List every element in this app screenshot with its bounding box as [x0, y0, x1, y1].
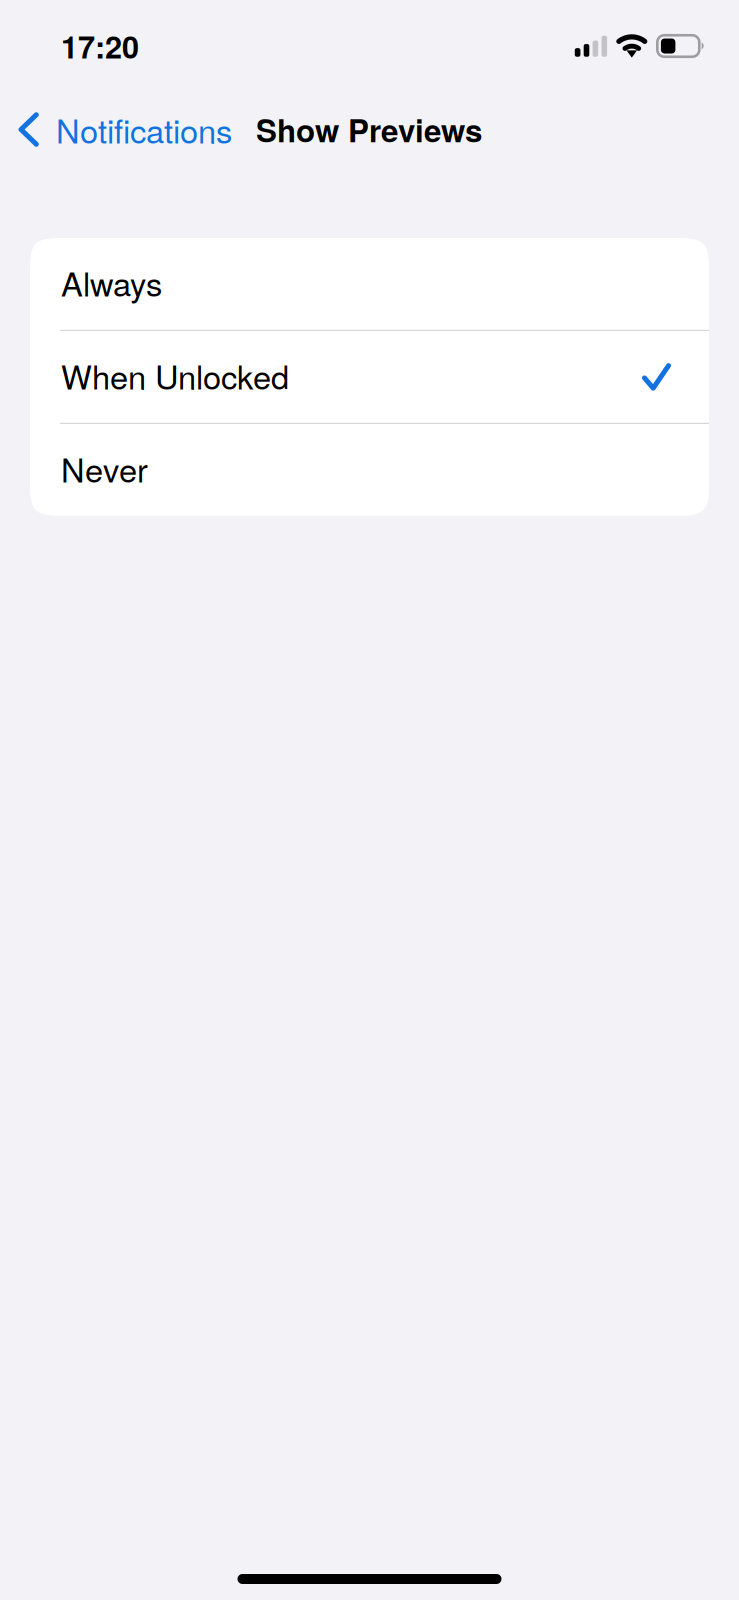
staticText: 17:20 — [61, 24, 139, 68]
staticText: Never — [61, 445, 148, 492]
staticText: Show Previews — [256, 107, 482, 152]
button[interactable]: Notifications — [0, 106, 232, 153]
button[interactable]: Always — [30, 238, 709, 330]
staticText: Always — [61, 259, 162, 306]
button[interactable]: When Unlocked — [30, 331, 709, 423]
button[interactable]: Never — [30, 424, 709, 516]
staticText: When Unlocked — [61, 352, 289, 399]
staticText: Notifications — [56, 106, 232, 153]
